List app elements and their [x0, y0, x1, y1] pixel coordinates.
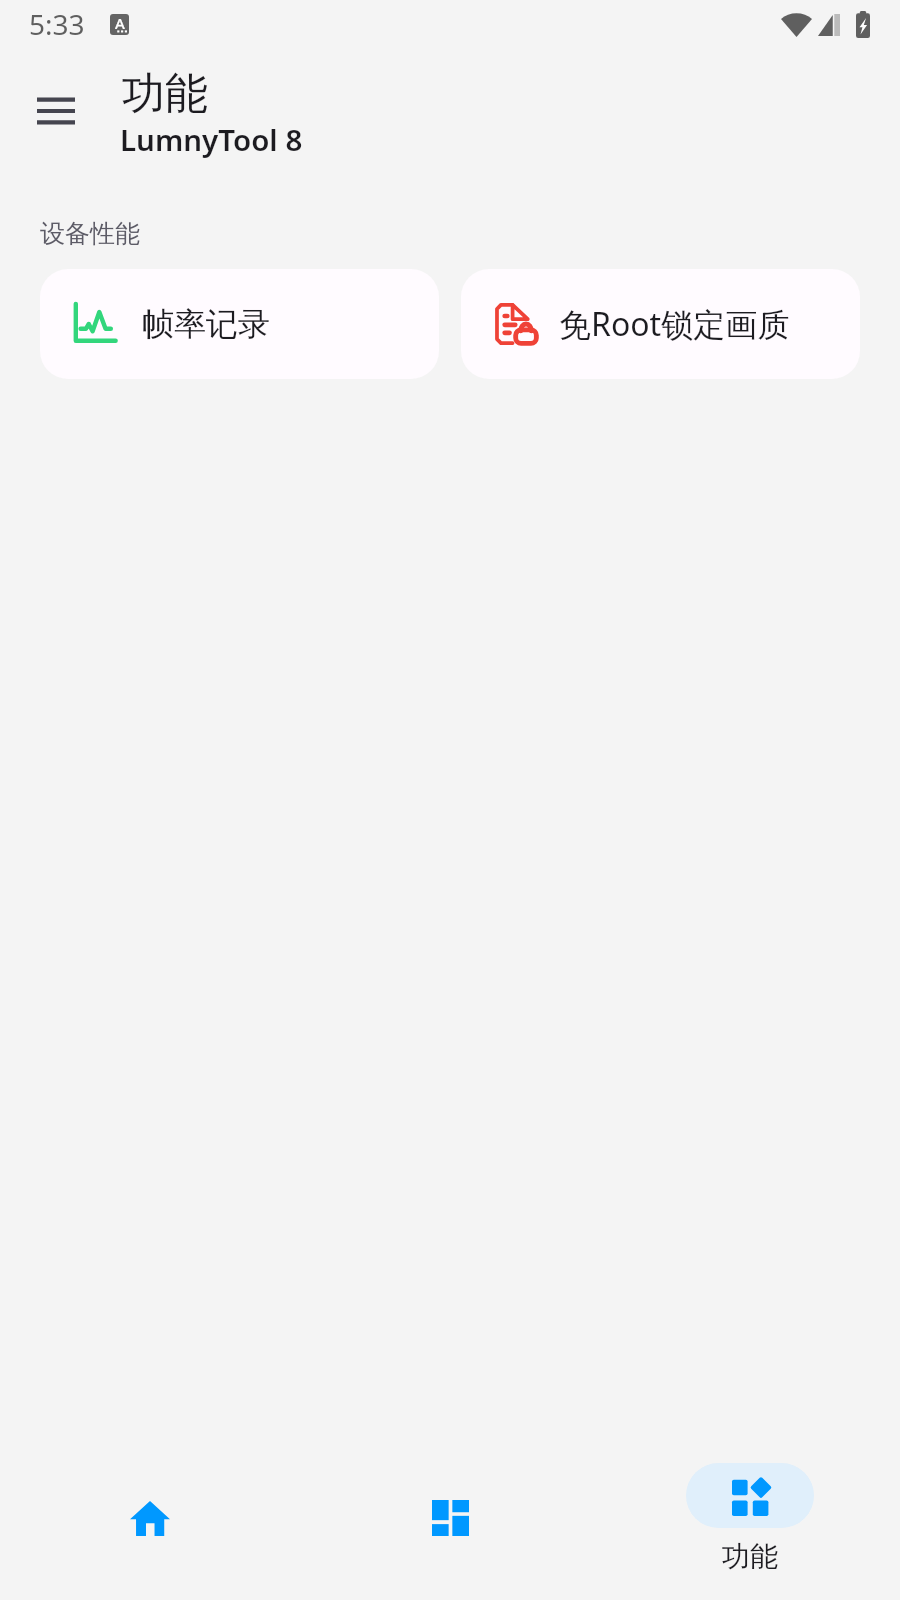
button[interactable]: 功能 — [600, 1430, 900, 1600]
staticText: 功能 — [722, 1539, 778, 1574]
staticText: 功能 — [122, 67, 208, 121]
staticText: A — [115, 14, 125, 33]
staticText: 免Root锁定画质 — [559, 302, 790, 346]
button[interactable]: 免Root锁定画质 — [461, 269, 860, 379]
button[interactable]: Home — [0, 1430, 300, 1600]
staticText: 5:33 — [29, 5, 85, 43]
staticText: LumnyTool 8 — [120, 119, 303, 159]
staticText: 帧率记录 — [142, 304, 270, 344]
button[interactable]: 帧率记录 — [40, 269, 439, 379]
staticText: 设备性能 — [40, 218, 140, 249]
button[interactable]: Dashboard — [300, 1430, 600, 1600]
button[interactable]: Menu — [22, 77, 90, 145]
